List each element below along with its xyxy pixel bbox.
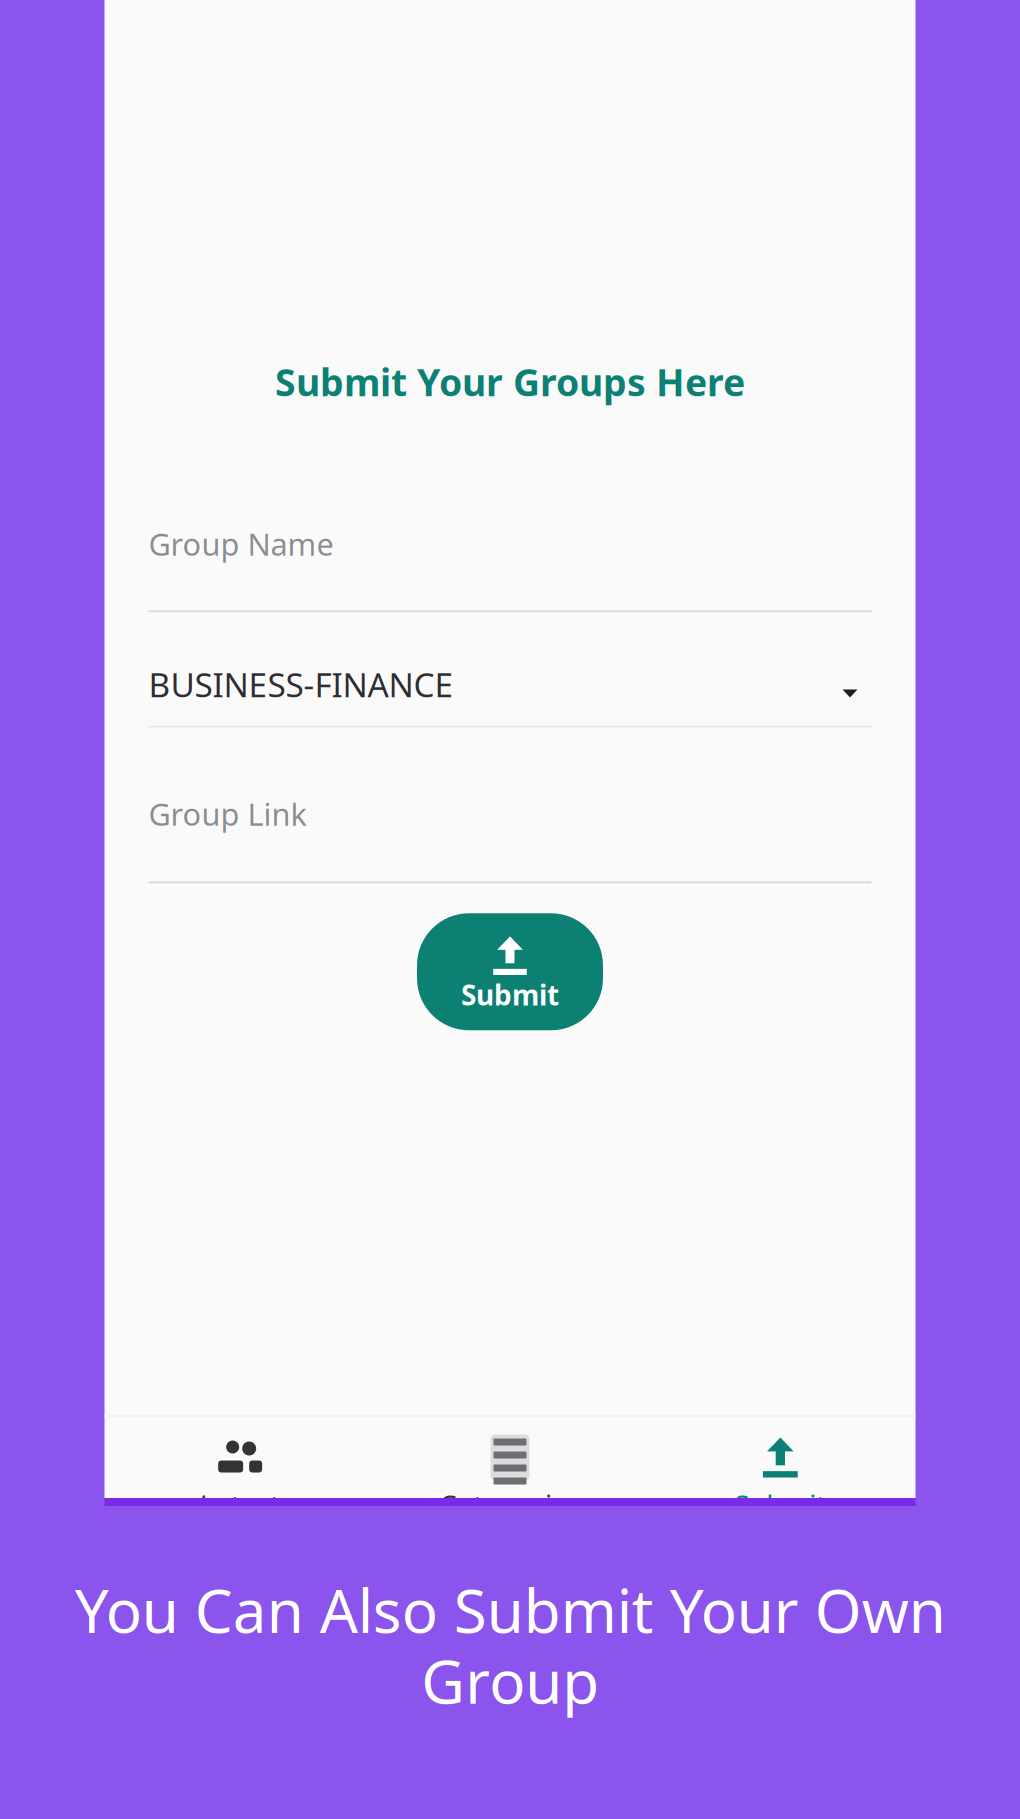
staticText: Group Name — [148, 524, 333, 564]
button[interactable]: Group Name — [148, 524, 871, 612]
button[interactable]: Submit — [645, 1435, 915, 1523]
staticText: Group Link — [148, 794, 306, 834]
button[interactable]: BUSINESS-FINANCE — [148, 662, 871, 728]
button[interactable]: Categories — [375, 1435, 645, 1523]
staticText: Latest — [200, 1486, 280, 1523]
staticText: You Can Also Submit Your Own Group — [74, 1570, 945, 1720]
button[interactable]: Submit — [417, 913, 603, 1030]
staticText: BUSINESS-FINANCE — [148, 662, 453, 707]
button[interactable]: Latest — [104, 1435, 375, 1523]
staticText: Submit Your Groups Here — [275, 357, 745, 407]
staticText: Submit — [461, 976, 559, 1013]
button[interactable]: Group Link — [148, 794, 871, 883]
staticText: Submit — [734, 1486, 826, 1523]
staticText: Categories — [439, 1486, 581, 1523]
